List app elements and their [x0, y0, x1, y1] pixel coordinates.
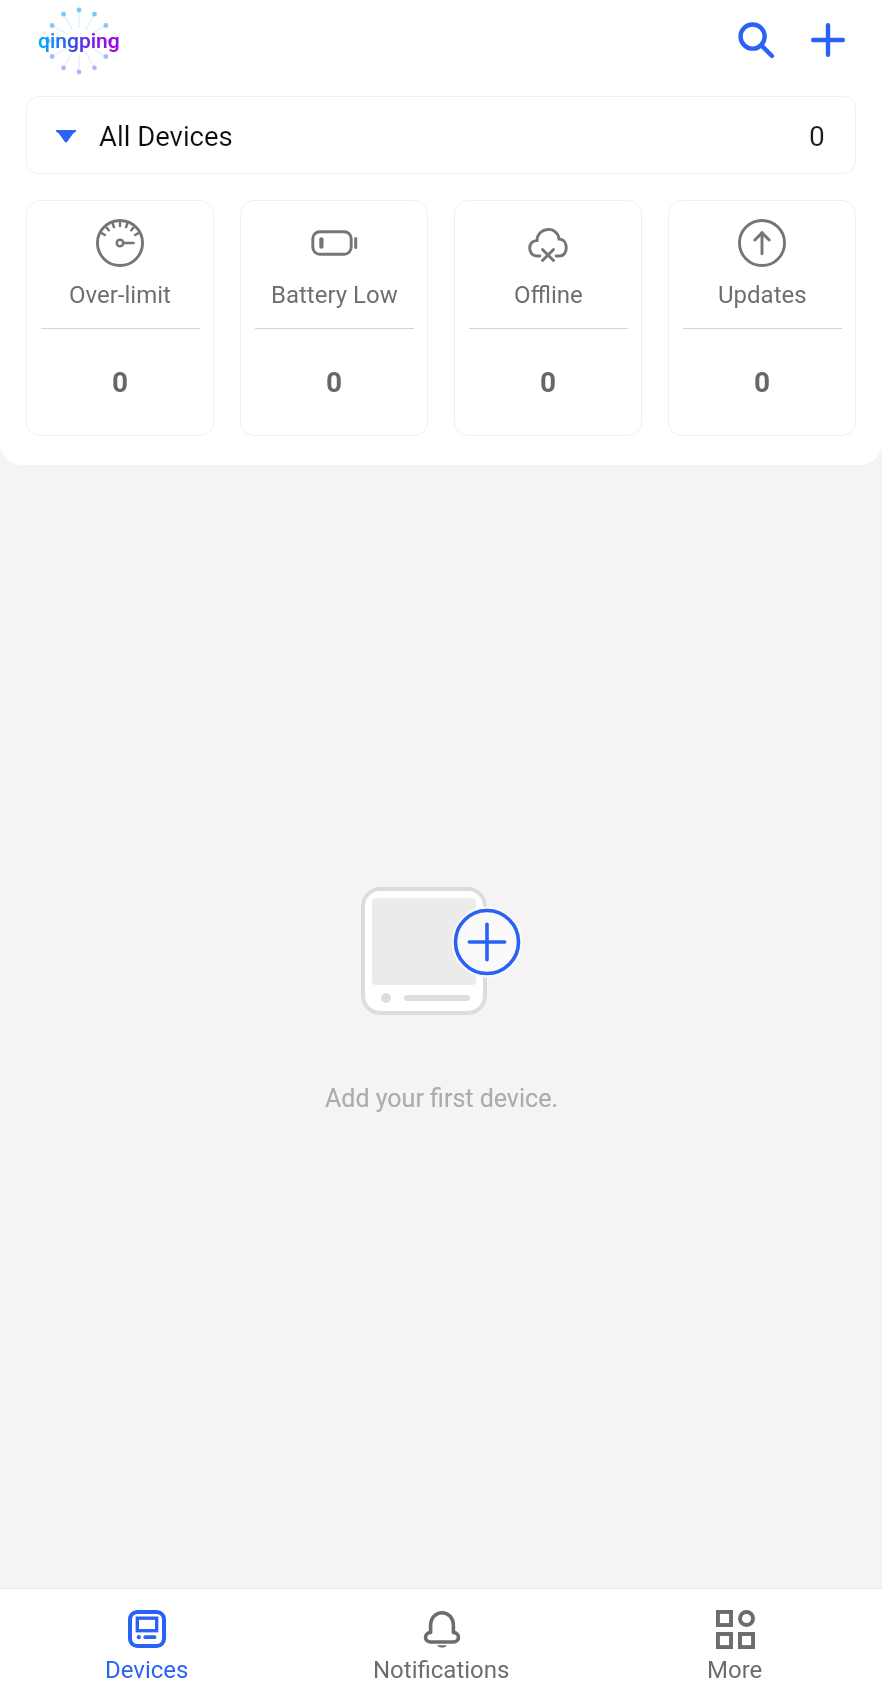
staticText: Battery Low	[271, 281, 398, 309]
staticText: More	[707, 1656, 763, 1684]
staticText: 0	[809, 120, 825, 153]
button[interactable]: Updates	[668, 200, 856, 436]
staticText: Offline	[514, 281, 583, 309]
staticText: All Devices	[99, 120, 233, 152]
staticText: Add your first device.	[325, 1084, 558, 1113]
staticText: 0	[540, 366, 557, 399]
button[interactable]: All Devices	[26, 96, 856, 174]
button[interactable]: Battery Low	[240, 200, 428, 436]
staticText: 0	[754, 366, 771, 399]
button[interactable]: Search	[720, 4, 792, 76]
button[interactable]: More	[588, 1589, 882, 1699]
staticText: Notifications	[373, 1656, 510, 1684]
staticText: Over-limit	[69, 281, 171, 309]
staticText: Updates	[718, 281, 807, 309]
button[interactable]: Offline	[454, 200, 642, 436]
button[interactable]: Add device	[792, 4, 864, 76]
button[interactable]: Notifications	[294, 1589, 588, 1699]
staticText: qingping	[38, 29, 120, 54]
button[interactable]: Add your first device	[361, 885, 521, 1017]
button[interactable]: Over-limit	[26, 200, 214, 436]
staticText: 0	[112, 366, 129, 399]
staticText: 0	[326, 366, 343, 399]
staticText: Devices	[105, 1656, 189, 1684]
button[interactable]: Devices	[0, 1589, 294, 1699]
